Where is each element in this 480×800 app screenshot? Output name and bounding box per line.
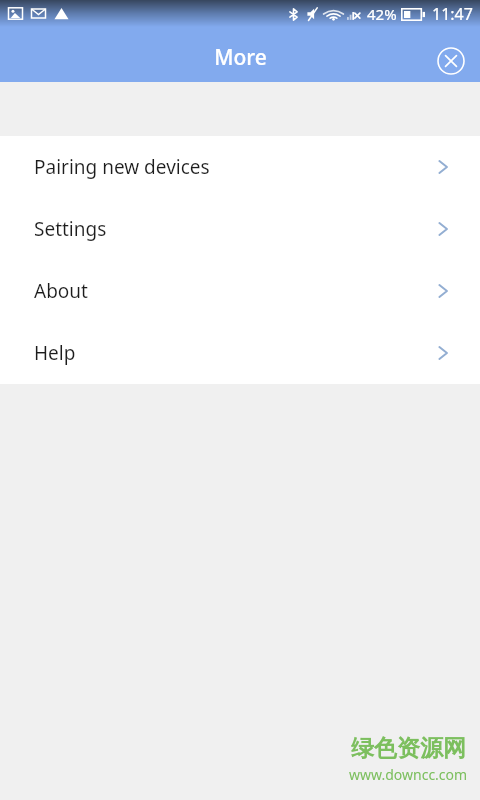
button[interactable]: Pairing new devices (0, 136, 480, 198)
button[interactable]: Close (435, 45, 467, 77)
staticText: More (214, 43, 267, 72)
staticText: 绿色资源网 (351, 734, 466, 763)
staticText: 11:47 (432, 3, 473, 25)
staticText: www.downcc.com (349, 765, 468, 784)
staticText: Help (34, 340, 76, 366)
staticText: About (34, 278, 88, 304)
staticText: 42% (367, 4, 397, 24)
staticText: Pairing new devices (34, 154, 210, 180)
button[interactable]: Help (0, 322, 480, 384)
staticText: Settings (34, 216, 107, 242)
button[interactable]: Settings (0, 198, 480, 260)
button[interactable]: About (0, 260, 480, 322)
